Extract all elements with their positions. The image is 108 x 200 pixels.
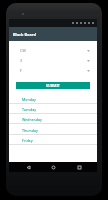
button[interactable]: 3: [16, 56, 90, 65]
button[interactable]: Wednesday: [9, 114, 97, 124]
staticText: Tuesday: [22, 107, 37, 112]
button[interactable]: Back: [21, 162, 35, 172]
button[interactable]: Friday: [9, 135, 97, 145]
button[interactable]: Black Board: [9, 27, 97, 41]
staticText: Monday: [22, 97, 36, 102]
button[interactable]: SUBMIT: [16, 82, 90, 89]
button[interactable]: Tuesday: [9, 104, 97, 114]
staticText: CSE: [20, 48, 27, 53]
button[interactable]: Home: [46, 162, 60, 172]
button[interactable]: Thursday: [9, 125, 97, 135]
staticText: Friday: [22, 138, 33, 143]
staticText: 3: [20, 58, 23, 63]
button[interactable]: F: [16, 66, 90, 75]
button[interactable]: Recents: [72, 162, 86, 172]
button[interactable]: Monday: [9, 94, 97, 104]
button[interactable]: CSE: [16, 46, 90, 55]
staticText: Wednesday: [22, 117, 42, 122]
staticText: SUBMIT: [46, 83, 60, 88]
staticText: Black Board: [13, 32, 36, 37]
staticText: F: [20, 68, 22, 73]
staticText: Thursday: [22, 128, 38, 133]
